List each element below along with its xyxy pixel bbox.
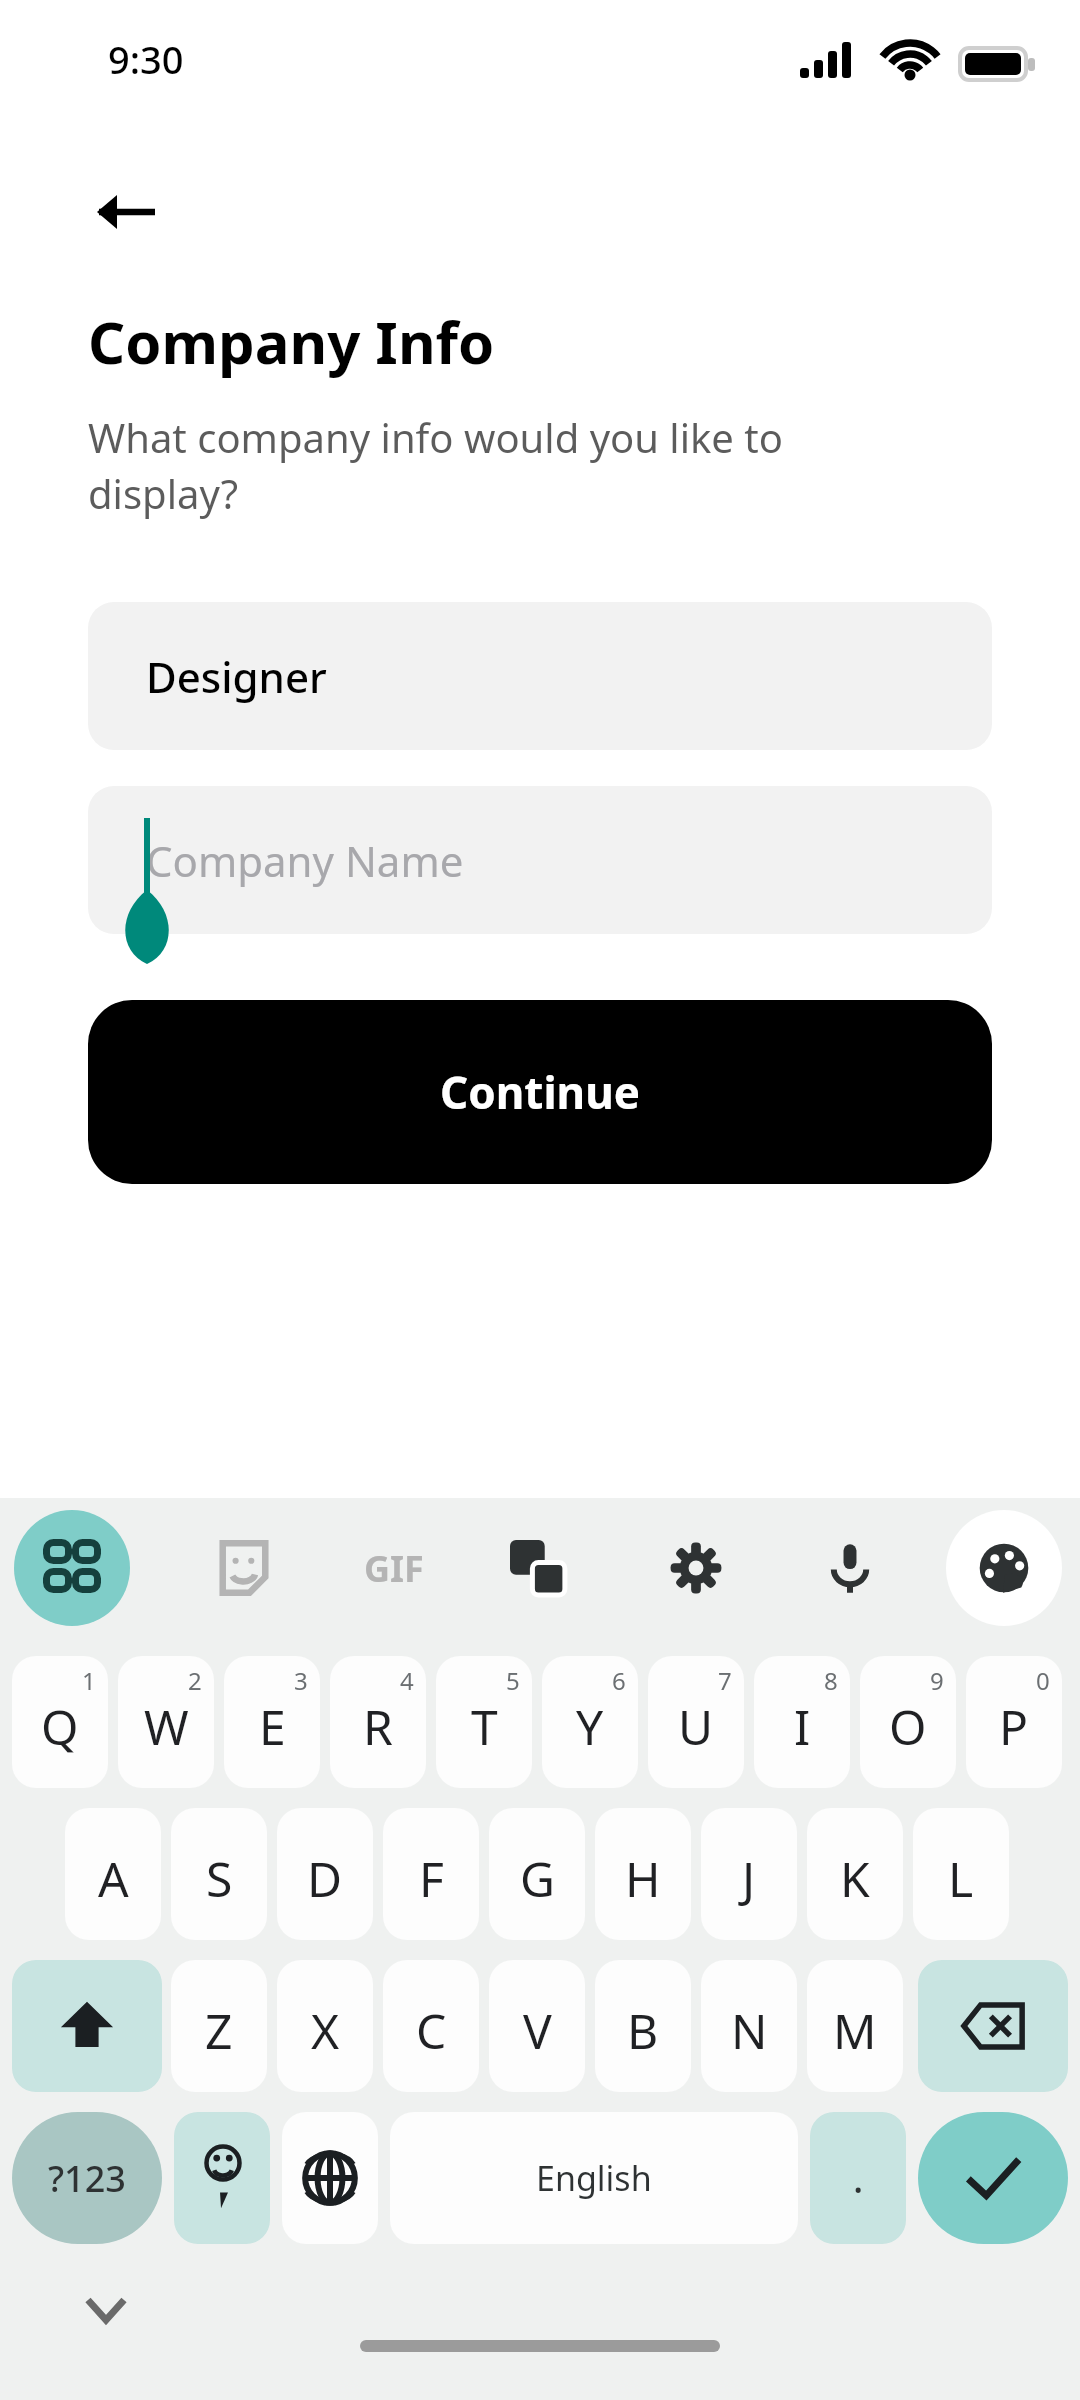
staticText: 6 bbox=[612, 1664, 626, 1697]
staticText: 0 bbox=[1036, 1664, 1050, 1697]
button[interactable]: GIF bbox=[336, 1510, 452, 1626]
button[interactable]: S bbox=[171, 1808, 267, 1940]
staticText: . bbox=[853, 2152, 864, 2204]
button[interactable]: English bbox=[390, 2112, 798, 2244]
staticText: A bbox=[98, 1846, 129, 1911]
button[interactable]: C bbox=[383, 1960, 479, 2092]
button[interactable]: Settings bbox=[638, 1510, 754, 1626]
button[interactable]: I bbox=[754, 1656, 850, 1788]
staticText: V bbox=[523, 1998, 552, 2063]
staticText: Company Name bbox=[146, 832, 464, 889]
staticText: English bbox=[536, 2155, 652, 2201]
staticText: Z bbox=[205, 1998, 233, 2063]
button[interactable]: Q bbox=[12, 1656, 108, 1788]
button[interactable]: ?123 bbox=[12, 2112, 162, 2244]
button[interactable]: J bbox=[701, 1808, 797, 1940]
button[interactable]: Designer bbox=[88, 602, 992, 750]
button[interactable]: W bbox=[118, 1656, 214, 1788]
staticText: Q bbox=[41, 1694, 79, 1759]
button[interactable]: G bbox=[489, 1808, 585, 1940]
staticText: L bbox=[948, 1846, 974, 1911]
button[interactable]: Shift bbox=[12, 1960, 162, 2092]
staticText: G bbox=[520, 1846, 555, 1911]
staticText: F bbox=[419, 1846, 444, 1911]
button[interactable]: M bbox=[807, 1960, 903, 2092]
staticText: 8 bbox=[824, 1664, 838, 1697]
button[interactable]: D bbox=[277, 1808, 373, 1940]
staticText: 9:30 bbox=[108, 33, 184, 85]
button[interactable]: H bbox=[595, 1808, 691, 1940]
staticText: ?123 bbox=[48, 2154, 126, 2203]
staticText: Y bbox=[576, 1694, 604, 1759]
button[interactable]: O bbox=[860, 1656, 956, 1788]
staticText: P bbox=[999, 1694, 1029, 1759]
staticText: Continue bbox=[440, 1062, 641, 1122]
staticText: 4 bbox=[400, 1664, 414, 1697]
button[interactable]: Voice input bbox=[792, 1510, 908, 1626]
staticText: N bbox=[731, 1998, 768, 2063]
button[interactable]: . bbox=[810, 2112, 906, 2244]
staticText: Designer bbox=[146, 648, 327, 705]
button[interactable]: Backspace bbox=[918, 1960, 1068, 2092]
staticText: B bbox=[627, 1998, 659, 2063]
button[interactable]: R bbox=[330, 1656, 426, 1788]
staticText: H bbox=[625, 1846, 661, 1911]
button[interactable]: Change language bbox=[282, 2112, 378, 2244]
staticText: C bbox=[416, 1998, 447, 2063]
button[interactable]: A bbox=[65, 1808, 161, 1940]
button[interactable]: T bbox=[436, 1656, 532, 1788]
staticText: 2 bbox=[188, 1664, 202, 1697]
staticText: 5 bbox=[506, 1664, 520, 1697]
staticText: R bbox=[363, 1694, 393, 1759]
staticText: J bbox=[742, 1846, 756, 1911]
staticText: What company info would you like to disp… bbox=[88, 410, 783, 521]
button[interactable]: V bbox=[489, 1960, 585, 2092]
button[interactable]: B bbox=[595, 1960, 691, 2092]
staticText: I bbox=[794, 1694, 811, 1759]
staticText: T bbox=[471, 1694, 498, 1759]
button[interactable]: Toolbox bbox=[14, 1510, 130, 1626]
button[interactable]: Themes bbox=[946, 1510, 1062, 1626]
button[interactable]: U bbox=[648, 1656, 744, 1788]
staticText: X bbox=[311, 1998, 340, 2063]
staticText: M bbox=[833, 1998, 877, 2063]
staticText: 9 bbox=[930, 1664, 944, 1697]
button[interactable]: Enter bbox=[918, 2112, 1068, 2244]
button[interactable]: Back bbox=[78, 164, 174, 260]
button[interactable]: K bbox=[807, 1808, 903, 1940]
staticText: 7 bbox=[718, 1664, 732, 1697]
button[interactable]: Stickers bbox=[186, 1510, 302, 1626]
staticText: S bbox=[206, 1846, 233, 1911]
staticText: E bbox=[259, 1694, 286, 1759]
button[interactable]: F bbox=[383, 1808, 479, 1940]
button[interactable]: Continue bbox=[88, 1000, 992, 1184]
button[interactable]: E bbox=[224, 1656, 320, 1788]
staticText: D bbox=[307, 1846, 343, 1911]
button[interactable]: Y bbox=[542, 1656, 638, 1788]
button[interactable]: Hide keyboard bbox=[62, 2266, 150, 2354]
button[interactable]: N bbox=[701, 1960, 797, 2092]
button[interactable]: Company Name bbox=[88, 786, 992, 934]
button[interactable]: P bbox=[966, 1656, 1062, 1788]
button[interactable]: Z bbox=[171, 1960, 267, 2092]
button[interactable]: L bbox=[913, 1808, 1009, 1940]
staticText: K bbox=[840, 1846, 870, 1911]
staticText: U bbox=[678, 1694, 714, 1759]
staticText: 3 bbox=[294, 1664, 308, 1697]
button[interactable]: Emoji bbox=[174, 2112, 270, 2244]
staticText: O bbox=[889, 1694, 927, 1759]
staticText: GIF bbox=[364, 1544, 424, 1593]
staticText: W bbox=[144, 1694, 189, 1759]
button[interactable]: X bbox=[277, 1960, 373, 2092]
staticText: Company Info bbox=[88, 302, 495, 381]
button[interactable]: Translate bbox=[480, 1510, 596, 1626]
staticText: 1 bbox=[82, 1664, 96, 1697]
